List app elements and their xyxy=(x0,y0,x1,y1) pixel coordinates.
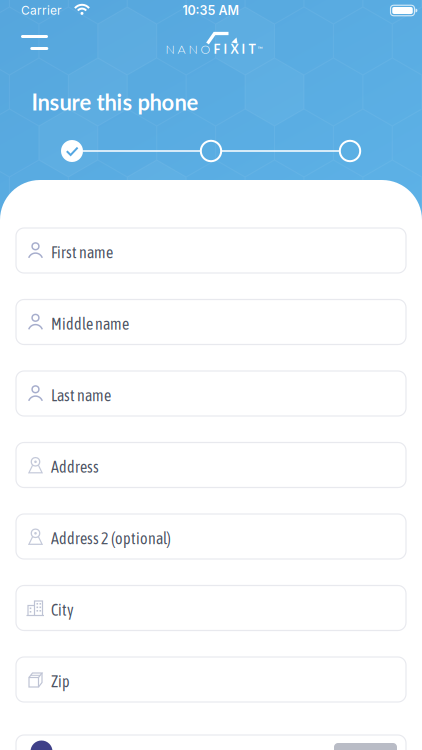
staticText: City xyxy=(51,601,74,619)
button[interactable]: First name xyxy=(0,0,422,750)
staticText: 10:35 AM xyxy=(182,3,239,18)
staticText: N A N O xyxy=(165,42,213,56)
staticText: Middle name xyxy=(51,315,129,333)
staticText: Zip xyxy=(51,672,70,691)
button[interactable]: Address xyxy=(0,0,422,750)
staticText: F I X I T xyxy=(213,42,255,56)
staticText: Address xyxy=(51,458,99,476)
button[interactable]: Zip xyxy=(0,0,422,750)
staticText: First name xyxy=(51,243,113,262)
button[interactable]: Middle name xyxy=(0,0,422,750)
button[interactable]: City xyxy=(0,0,422,750)
staticText: Carrier xyxy=(21,3,62,18)
staticText: Last name xyxy=(51,386,111,405)
staticText: ™ xyxy=(255,45,262,53)
staticText: Address 2 (optional) xyxy=(51,529,171,548)
button[interactable] xyxy=(0,0,422,750)
staticText: Insure this phone xyxy=(31,89,198,115)
button[interactable]: Last name xyxy=(0,0,422,750)
button[interactable]: Address 2 (optional) xyxy=(0,0,422,750)
button[interactable] xyxy=(0,0,422,750)
